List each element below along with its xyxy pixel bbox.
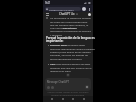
- button[interactable]: Profile: [88, 13, 91, 16]
- button[interactable]: Message ChatGPT: [45, 78, 91, 91]
- staticText: de arriba de la boca puede hacer: [50, 20, 88, 23]
- button[interactable]: ChatGPT 4o: [59, 12, 78, 16]
- button[interactable]: More options: [87, 7, 91, 11]
- staticText: que los sonidos sean confusos, lo: [50, 23, 89, 26]
- staticText: No pronunciar la lengua en la parte: [50, 16, 91, 19]
- staticText: ChatGPT puede cometer errores. Considera…: [45, 91, 91, 97]
- staticText: Posición ideal: la lengua debe: [50, 43, 85, 46]
- button[interactable]: Voice mode: [85, 85, 89, 89]
- button[interactable]: Back: [50, 97, 54, 101]
- staticText: resonantes o problemas de postura: [50, 29, 91, 32]
- staticText: chatgpt.com/c/67f9b1: [49, 8, 74, 11]
- staticText: fluyendo mas aire por la boca con la: [50, 66, 92, 69]
- staticText: 9:41: [45, 1, 51, 5]
- staticText: superior, justo detras de los dientes: [50, 50, 91, 53]
- button[interactable]: Forward: [61, 97, 65, 101]
- staticText: y terminos: [50, 33, 63, 36]
- staticText: cual causa dificultades: [50, 26, 77, 29]
- staticText: Porqué la posición de la lengua es: [46, 36, 95, 40]
- button[interactable]: Scroll to bottom: [66, 73, 70, 77]
- staticText: Message ChatGPT: [47, 80, 70, 84]
- button[interactable]: Account: [82, 7, 86, 11]
- button[interactable]: Tabs: [82, 97, 86, 101]
- staticText: ChatGPT 4o: [59, 12, 75, 16]
- button[interactable]: Attach file: [47, 86, 50, 89]
- button[interactable]: Tools: [51, 86, 54, 89]
- staticText: lengua en el lugar: [50, 69, 71, 72]
- staticText: importante:: [46, 39, 64, 43]
- staticText: frontales, sin tocar los dientes de: [50, 53, 88, 56]
- staticText: Aire: toda postura general de dejar: [50, 62, 91, 65]
- button[interactable]: Menu: [45, 12, 49, 16]
- button[interactable]: Share: [71, 97, 75, 101]
- button[interactable]: chatgpt.com/c/67f9b1: [45, 7, 81, 11]
- staticText: forma ligeramente correcta: [50, 57, 82, 60]
- staticText: apoyarse ligeramente contra el paladar: [50, 47, 95, 50]
